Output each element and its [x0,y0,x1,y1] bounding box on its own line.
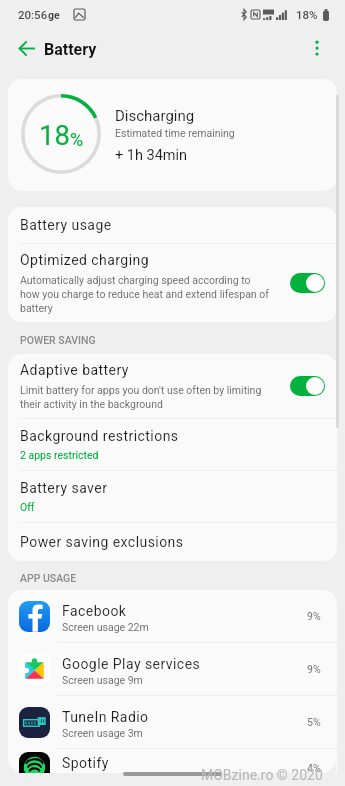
staticText: 20:56 [18,8,48,21]
button[interactable]: 18 [8,79,337,191]
staticText: Power saving exclusions [20,534,184,550]
staticText: 9% [307,663,321,675]
button[interactable]: Adaptive battery [8,354,337,418]
button[interactable]: Google Play services [8,643,337,695]
staticText: Google Play services [62,656,201,672]
staticText: Background restrictions [20,428,179,444]
button[interactable]: Spotify [8,749,337,786]
button[interactable]: Battery saver [8,471,337,522]
button[interactable]: Facebook [8,590,337,642]
staticText: Automatically adjust charging speed acco… [20,274,271,314]
button[interactable]: More options [297,28,337,68]
staticText: Screen usage 3m [62,727,143,739]
button[interactable]: Toggle [290,273,325,293]
staticText: Battery saver [20,480,108,496]
staticText: Estimated time remaining [115,127,235,139]
staticText: POWER SAVING [20,334,96,346]
staticText: Battery usage [20,217,112,233]
staticText: Discharging [115,107,195,125]
staticText: % [70,129,84,150]
staticText: APP USAGE [20,572,77,584]
button[interactable]: Background restrictions [8,419,337,470]
staticText: Facebook [62,603,127,619]
staticText: TuneIn Radio [62,709,149,725]
staticText: Screen usage 22m [62,621,149,633]
staticText: Optimized charging [20,252,150,268]
staticText: 9% [307,610,321,622]
staticText: Spotify [62,755,109,771]
button[interactable]: Back [8,29,46,67]
staticText: 18 [39,119,70,151]
staticText: 18% [296,8,318,21]
staticText: Screen usage 9m [62,674,143,686]
button[interactable]: Toggle [290,376,325,396]
button[interactable]: Optimized charging [8,244,337,322]
staticText: ge [48,9,60,21]
staticText: MOBzine.ro © 2020 [201,767,323,783]
staticText: Battery [44,40,97,59]
staticText: + 1h 34min [115,147,188,164]
staticText: 5% [307,716,321,728]
staticText: Off [20,501,35,513]
staticText: 4% [307,762,321,774]
button[interactable]: TuneIn Radio [8,696,337,748]
button[interactable]: Power saving exclusions [8,523,337,561]
button[interactable]: Battery usage [8,207,337,243]
staticText: Limit battery for apps you don't use oft… [20,384,271,410]
staticText: Adaptive battery [20,362,129,378]
staticText: 2 apps restricted [20,449,99,461]
staticText: Screen usage 1m [62,773,143,785]
